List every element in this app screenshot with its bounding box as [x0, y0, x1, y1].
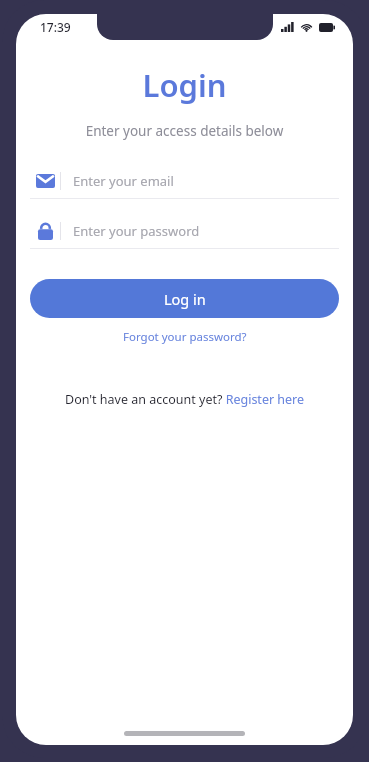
staticText: Enter your email	[73, 172, 174, 190]
staticText: Log in	[164, 289, 206, 309]
staticText: Don't have an account yet? Register here	[65, 391, 305, 408]
other: Email	[36, 174, 55, 188]
staticText: Forgot your password?	[123, 329, 247, 345]
staticText: 17:39	[40, 19, 71, 35]
staticText: Login	[16, 64, 353, 106]
staticText: Enter your password	[73, 222, 200, 240]
button[interactable]: Log in	[30, 279, 339, 318]
staticText: Enter your access details below	[16, 122, 353, 140]
button[interactable]: Don't have an account yet? Register here	[59, 388, 311, 411]
other: Password	[38, 222, 53, 240]
button[interactable]: Email	[30, 164, 339, 199]
button[interactable]: Password	[30, 214, 339, 249]
button[interactable]: Forgot your password?	[115, 326, 255, 348]
